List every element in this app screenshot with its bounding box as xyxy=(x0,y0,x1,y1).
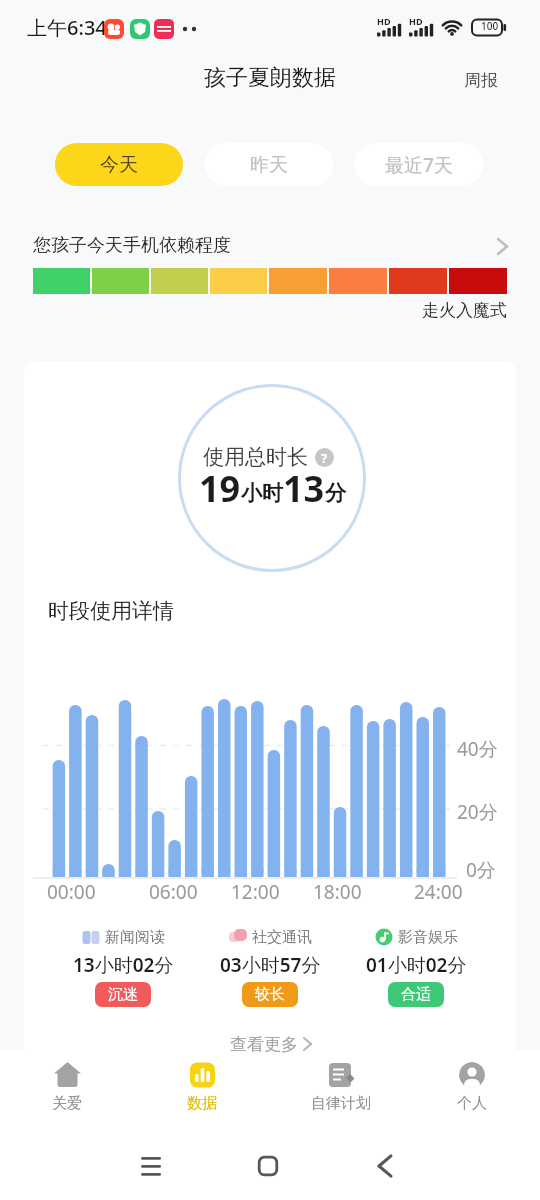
staticText: 小时 xyxy=(241,480,283,506)
staticText: 100 xyxy=(481,19,499,33)
staticText: 20分 xyxy=(457,799,498,825)
staticText: 13 xyxy=(283,464,325,510)
staticText: 24:00 xyxy=(414,879,463,905)
staticText: 时段使用详情 xyxy=(48,598,174,624)
staticText: HD xyxy=(377,15,391,27)
staticText: 自律计划 xyxy=(311,1094,371,1113)
staticText: 分 xyxy=(325,480,346,506)
button[interactable]: 最近7天 xyxy=(354,143,483,186)
staticText: 最近7天 xyxy=(385,152,453,178)
staticText: 上午6:34 xyxy=(27,14,107,41)
button[interactable] xyxy=(445,1058,500,1118)
staticText: 较长 xyxy=(255,985,285,1004)
staticText: 今天 xyxy=(100,153,138,177)
staticText: 沉迷 xyxy=(108,985,138,1004)
button[interactable]: 查看更多 xyxy=(195,1031,345,1057)
button[interactable] xyxy=(175,1058,230,1118)
staticText: 13小时02分 xyxy=(73,952,174,978)
button[interactable]: 周报 xyxy=(446,68,516,92)
button[interactable] xyxy=(40,1058,95,1118)
staticText: 周报 xyxy=(464,70,498,91)
button[interactable]: 今天 xyxy=(55,143,183,186)
staticText: 关爱 xyxy=(52,1094,82,1113)
staticText: 01小时02分 xyxy=(366,952,467,978)
staticText: 数据 xyxy=(187,1094,217,1113)
staticText: 昨天 xyxy=(250,153,288,177)
staticText: 合适 xyxy=(401,985,431,1004)
staticText: 孩子夏朗数据 xyxy=(204,64,336,92)
button[interactable]: ? xyxy=(315,448,334,467)
button[interactable] xyxy=(258,1156,278,1176)
staticText: 40分 xyxy=(457,736,498,762)
button[interactable] xyxy=(305,1058,375,1118)
staticText: 0分 xyxy=(466,857,496,883)
staticText: 个人 xyxy=(457,1094,487,1113)
button[interactable] xyxy=(378,1155,392,1177)
staticText: 查看更多 xyxy=(230,1034,298,1055)
staticText: 社交通讯 xyxy=(252,928,312,947)
button[interactable] xyxy=(141,1155,162,1176)
staticText: ? xyxy=(321,449,328,467)
staticText: 19 xyxy=(199,464,241,510)
staticText: 走火入魔式 xyxy=(422,300,507,321)
button[interactable]: 昨天 xyxy=(205,143,333,186)
staticText: 使用总时长 xyxy=(203,444,308,470)
staticText: 18:00 xyxy=(313,879,362,905)
staticText: 03小时57分 xyxy=(220,952,321,978)
staticText: 12:00 xyxy=(231,879,280,905)
staticText: HD xyxy=(409,15,423,27)
staticText: 您孩子今天手机依赖程度 xyxy=(33,234,231,257)
staticText: 新闻阅读 xyxy=(105,928,165,947)
button[interactable] xyxy=(24,228,516,268)
staticText: 06:00 xyxy=(149,879,198,905)
staticText: 影音娱乐 xyxy=(398,928,458,947)
staticText: 00:00 xyxy=(47,879,96,905)
